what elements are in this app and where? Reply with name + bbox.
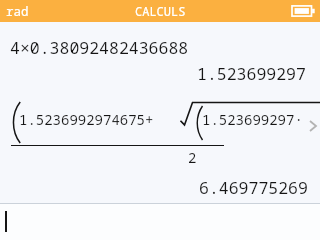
button[interactable]	[0, 203, 320, 240]
staticText: CALCULS	[135, 3, 186, 19]
staticText: rad	[6, 3, 29, 20]
staticText: 4×0.38092482436688	[10, 36, 189, 58]
button[interactable]: rad	[0, 0, 320, 22]
staticText: 1.5236992974675+	[19, 110, 154, 129]
staticText: 2	[188, 148, 197, 167]
other: Battery	[292, 5, 315, 17]
staticText: 1.523699297·	[202, 110, 303, 129]
staticText: 6.469775269	[199, 176, 308, 198]
staticText: 1.523699297	[197, 62, 306, 84]
other: Scroll right	[309, 120, 317, 132]
